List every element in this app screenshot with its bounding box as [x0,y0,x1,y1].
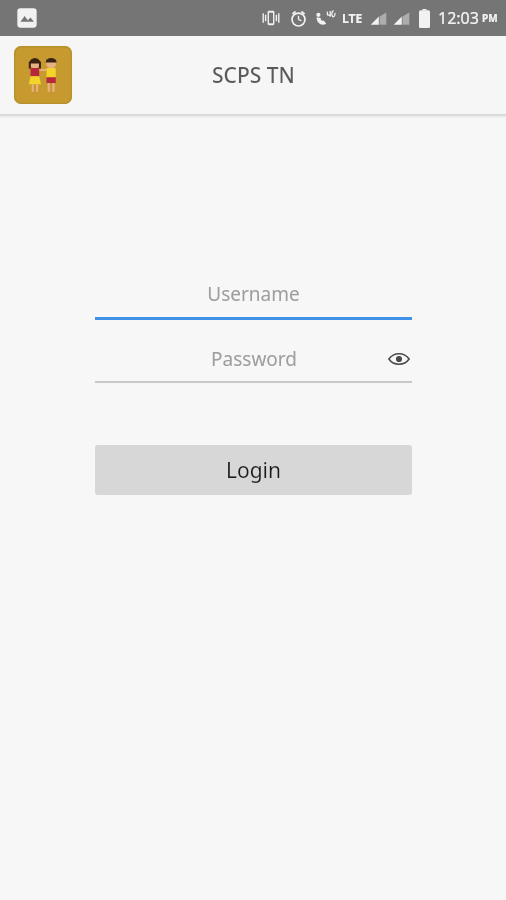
staticText: Login [226,456,282,485]
button[interactable]: Password [95,341,412,383]
button[interactable]: Username [95,276,412,320]
staticText: PM [482,11,498,25]
staticText: Password [211,346,297,372]
button[interactable]: Show password [386,346,412,372]
staticText: LTE [342,10,363,26]
staticText: SCPS TN [212,61,295,90]
staticText: 12:03 [438,7,479,29]
staticText: Username [207,281,300,307]
button[interactable]: App logo [14,46,72,104]
button[interactable]: Login [95,445,412,495]
